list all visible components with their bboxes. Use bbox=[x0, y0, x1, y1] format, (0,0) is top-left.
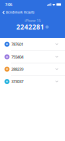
staticText: 7:06 bbox=[5, 2, 12, 7]
button[interactable]: 288239 bbox=[0, 63, 65, 75]
staticText: Benchmark Results bbox=[6, 11, 34, 14]
staticText: 793404 bbox=[11, 54, 23, 59]
staticText: 2242281 bbox=[16, 23, 44, 31]
staticText: 787601 bbox=[11, 42, 23, 47]
button[interactable]: Benchmark Results bbox=[0, 9, 36, 16]
button[interactable]: 373037 bbox=[0, 75, 65, 87]
staticText: 373037 bbox=[11, 79, 23, 84]
button[interactable]: 793404 bbox=[0, 50, 65, 63]
staticText: iPhone 15 bbox=[24, 18, 40, 23]
button[interactable]: 787601 bbox=[0, 38, 65, 50]
staticText: 288239 bbox=[11, 66, 23, 72]
